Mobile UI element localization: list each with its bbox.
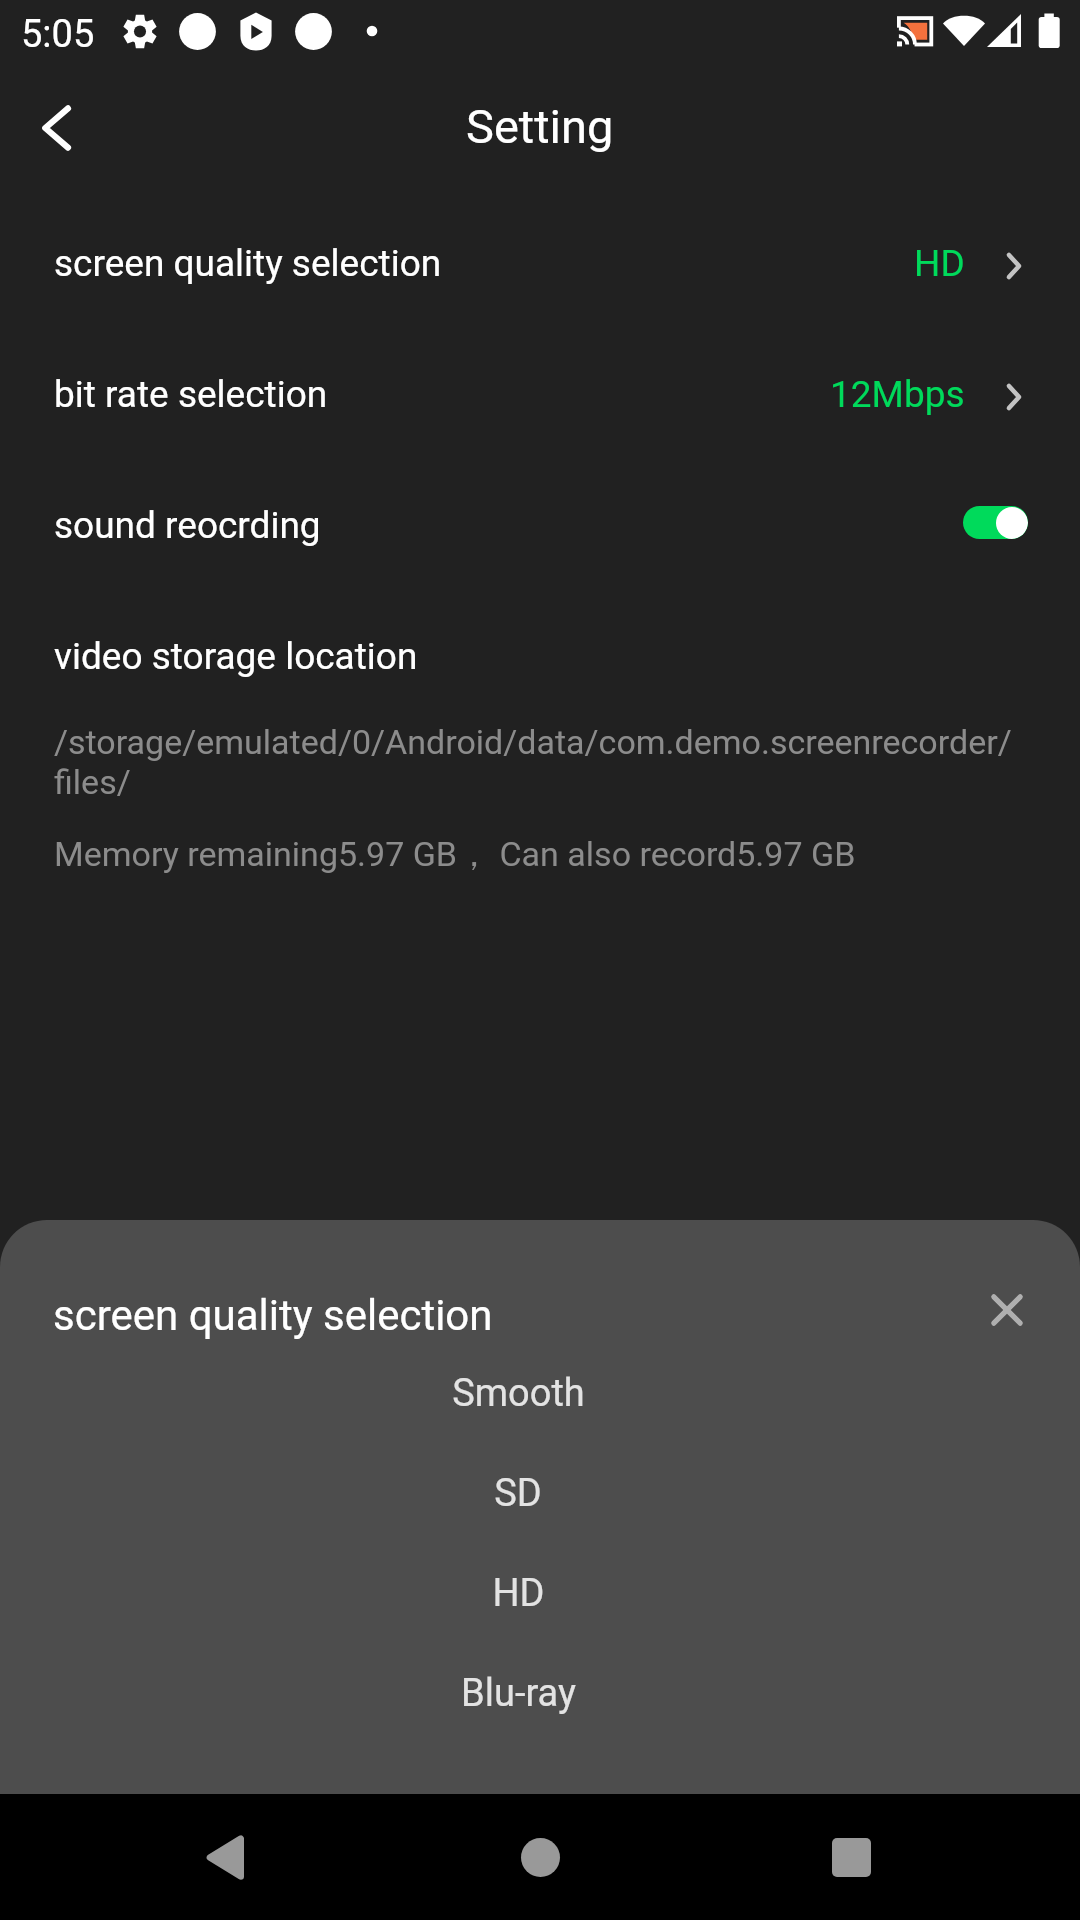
staticText: sound reocrding [54, 504, 321, 547]
button[interactable]: Close [975, 1278, 1039, 1342]
button[interactable]: SD [0, 1443, 1080, 1543]
button[interactable]: Back [6, 78, 106, 178]
staticText: HD [492, 1571, 545, 1616]
button[interactable]: screen quality selection [0, 198, 1080, 329]
button[interactable]: Sound recording toggle [963, 506, 1028, 539]
staticText: HD [914, 242, 965, 285]
button[interactable]: bit rate selection [0, 329, 1080, 460]
button[interactable]: Smooth [0, 1343, 1080, 1443]
button[interactable]: Back [165, 1794, 285, 1920]
staticText: SD [494, 1471, 542, 1516]
staticText: screen quality selection [53, 1291, 493, 1340]
staticText: bit rate selection [54, 373, 328, 416]
staticText: Blu-ray [461, 1671, 576, 1716]
staticText: video storage location [54, 635, 418, 678]
staticText: Memory remaining5.97 GB， Can also record… [54, 833, 856, 876]
staticText: 5:05 [21, 12, 95, 57]
button[interactable]: Recents [791, 1794, 911, 1920]
button[interactable]: Blu-ray [0, 1643, 1080, 1743]
staticText: Smooth [452, 1371, 585, 1416]
button[interactable]: Home [480, 1794, 600, 1920]
staticText: Setting [466, 99, 614, 154]
button[interactable]: sound reocrding [0, 460, 1080, 591]
button[interactable]: HD [0, 1543, 1080, 1643]
staticText: screen quality selection [54, 242, 442, 285]
staticText: 12Mbps [830, 373, 965, 416]
staticText: /storage/emulated/0/Android/data/com.dem… [54, 722, 1026, 802]
